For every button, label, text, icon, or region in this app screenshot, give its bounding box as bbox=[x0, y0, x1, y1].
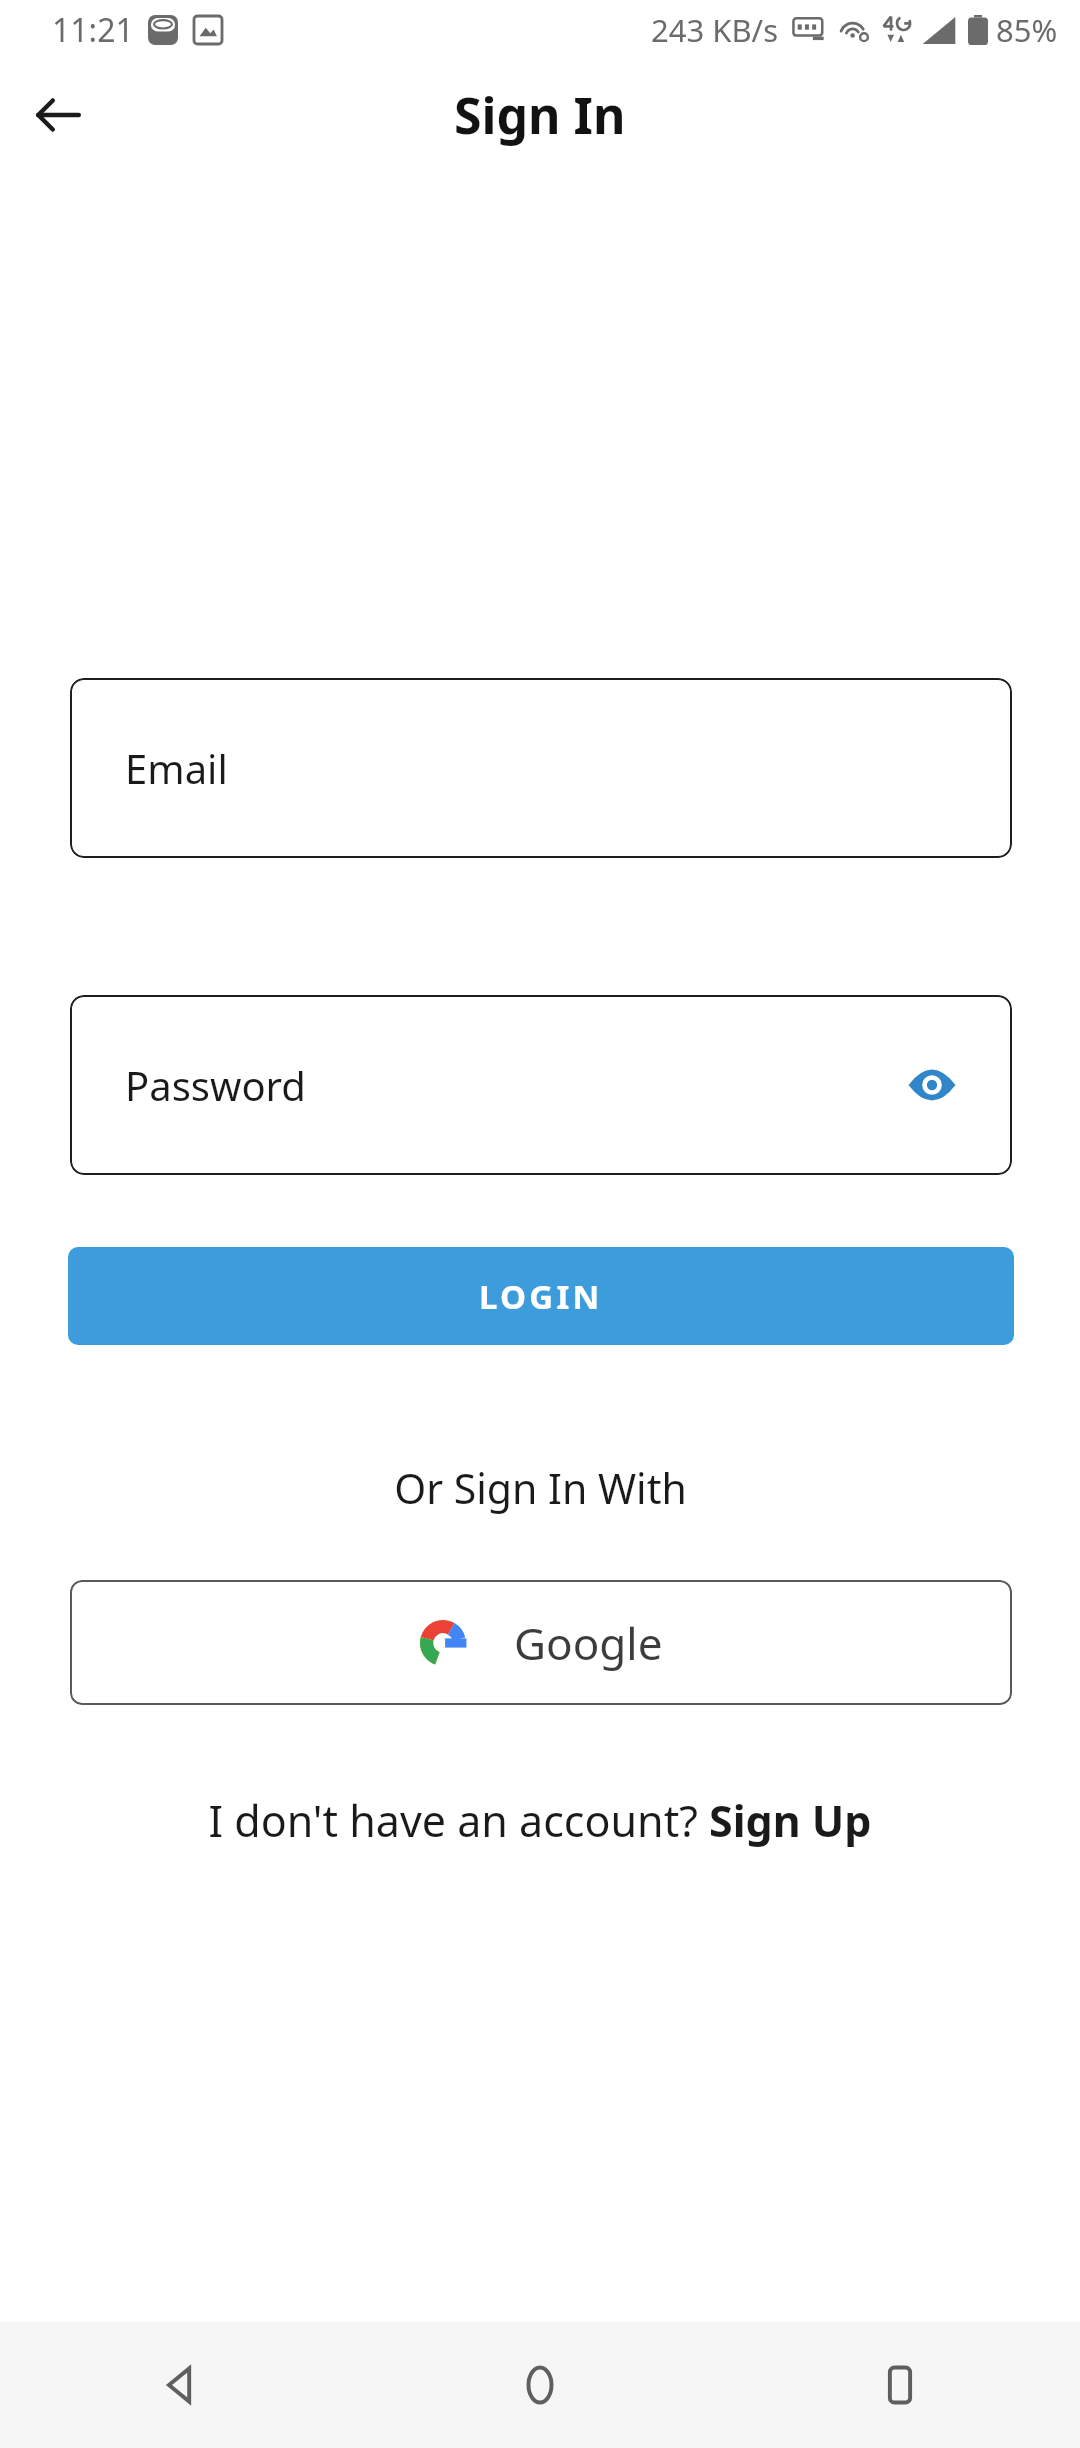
button[interactable]: Show password bbox=[900, 1053, 964, 1117]
staticText: 11:21 bbox=[52, 8, 134, 52]
staticText: Email bbox=[125, 741, 228, 795]
staticText: LOGIN bbox=[479, 1274, 603, 1319]
button[interactable]: Back bbox=[14, 71, 102, 159]
button[interactable]: Recent apps bbox=[720, 2322, 1080, 2448]
button[interactable]: I don't have an account? Sign Up bbox=[0, 1780, 1080, 1860]
button[interactable]: LOGIN bbox=[68, 1247, 1014, 1345]
staticText: Sign In bbox=[454, 81, 626, 149]
button[interactable]: Password bbox=[70, 995, 1012, 1175]
button[interactable]: Home bbox=[360, 2322, 720, 2448]
staticText: Or Sign In With bbox=[394, 1460, 687, 1516]
staticText: 243 KB/s bbox=[651, 9, 778, 51]
button[interactable]: Back bbox=[0, 2322, 360, 2448]
staticText: 85% bbox=[996, 9, 1058, 51]
staticText: I don't have an account? Sign Up bbox=[208, 1791, 872, 1850]
button[interactable]: Google bbox=[70, 1580, 1012, 1705]
staticText: Password bbox=[125, 1058, 306, 1112]
button[interactable]: Email bbox=[70, 678, 1012, 858]
staticText: Google bbox=[514, 1613, 663, 1673]
